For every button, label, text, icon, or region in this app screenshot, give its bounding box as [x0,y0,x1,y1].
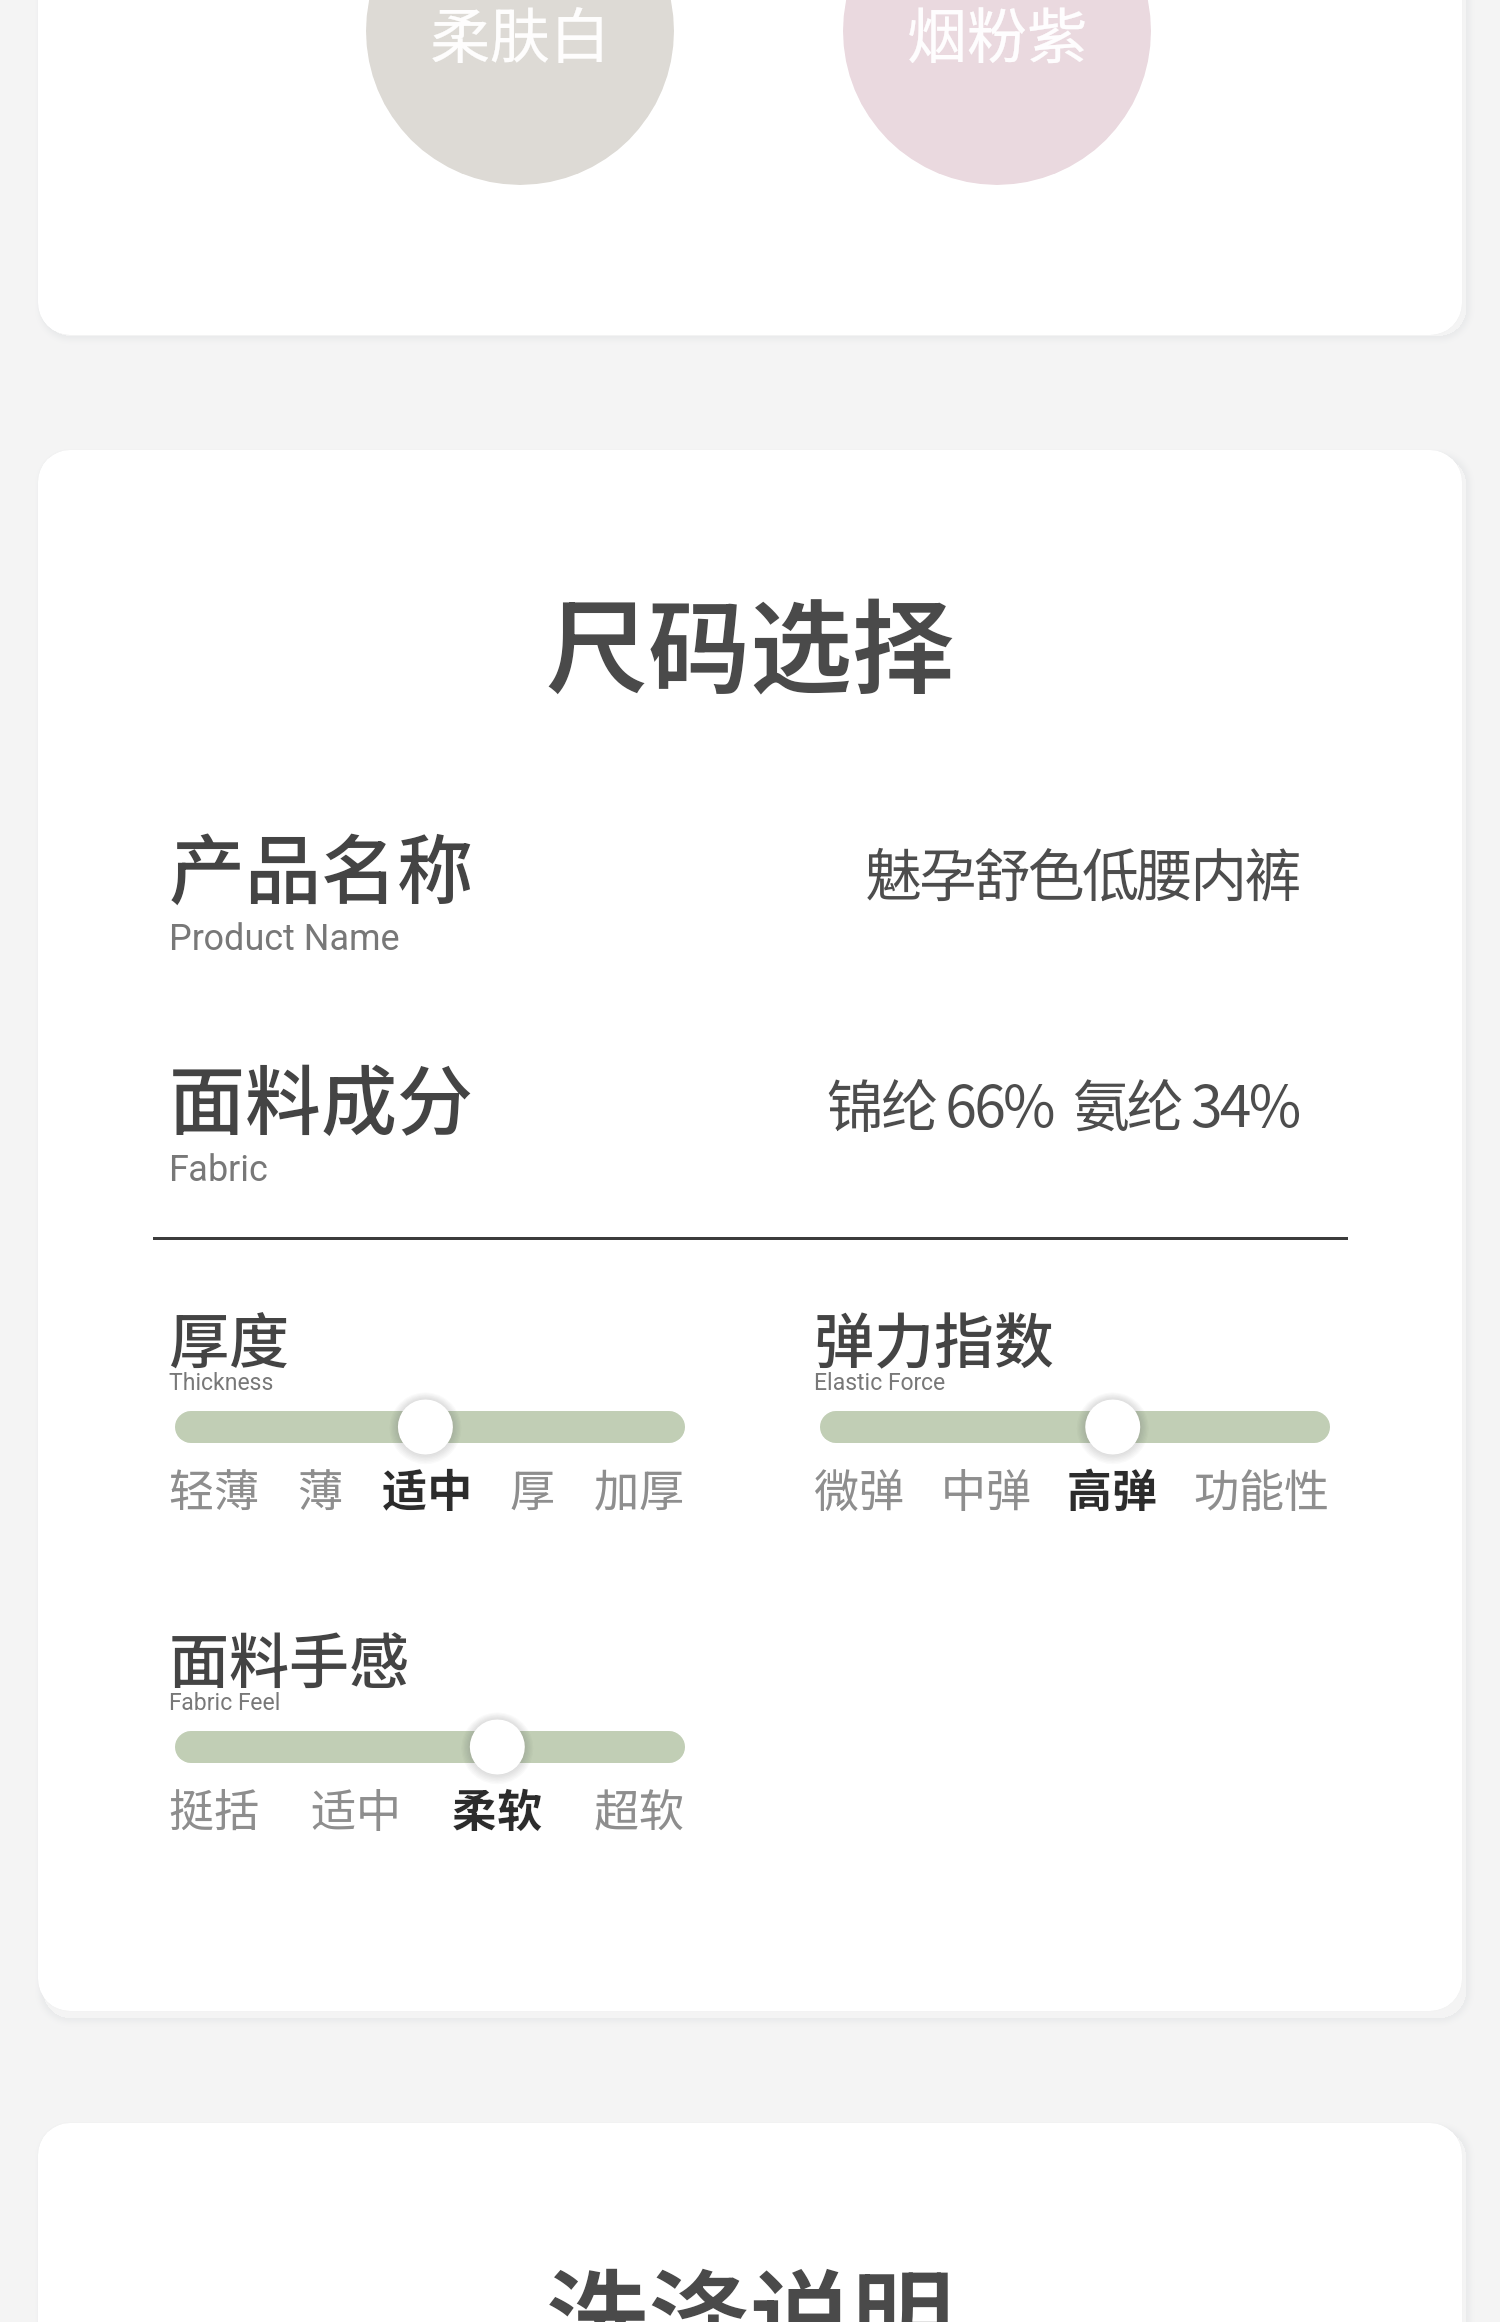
staticText: 柔软 [452,1775,543,1840]
staticText: 厚度 [169,1293,289,1380]
staticText: 尺码选择 [38,567,1462,715]
button[interactable]: 烟粉紫 [843,0,1151,185]
staticText: 洗涤说明 [38,2237,1462,2322]
staticText: 中弹 [941,1455,1032,1520]
staticText: 适中 [311,1775,402,1840]
staticText: 挺括 [169,1775,260,1840]
button[interactable]: 弹力指数 [814,1305,1330,1535]
staticText: Fabric Feel [169,1689,281,1716]
staticText: 功能性 [1194,1455,1330,1520]
staticText: 锦纶 66% 氨纶 34% [827,1061,1299,1144]
staticText: 产品名称 [169,810,473,920]
staticText: 超软 [594,1775,685,1840]
staticText: 加厚 [594,1455,685,1520]
button[interactable]: 产品名称 [169,810,1299,962]
staticText: Thickness [169,1369,274,1396]
staticText: 面料成分 [169,1041,473,1151]
button[interactable]: 面料成分 [169,1041,1299,1193]
staticText: 厚 [510,1455,556,1520]
staticText: Fabric [169,1148,268,1190]
button[interactable]: 柔肤白 [366,0,674,185]
staticText: 轻薄 [169,1455,260,1520]
button[interactable]: 厚度 [169,1305,685,1535]
staticText: 适中 [382,1455,473,1520]
staticText: 烟粉紫 [907,0,1087,75]
staticText: 薄 [298,1455,344,1520]
staticText: 面料手感 [169,1613,409,1700]
button[interactable]: 面料手感 [169,1625,685,1855]
staticText: 柔肤白 [430,0,610,75]
staticText: 高弹 [1067,1455,1158,1520]
staticText: Elastic Force [814,1369,946,1396]
staticText: 魅孕舒色低腰内裤 [865,830,1299,913]
staticText: 弹力指数 [814,1293,1054,1380]
staticText: Product Name [169,917,400,959]
staticText: 微弹 [814,1455,905,1520]
